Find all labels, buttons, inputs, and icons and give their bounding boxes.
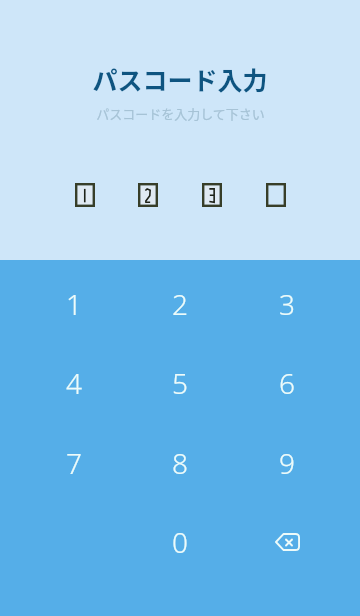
button[interactable]: 2 <box>127 264 233 344</box>
button[interactable]: 4 <box>21 343 127 423</box>
button[interactable]: Backspace <box>234 502 340 582</box>
button[interactable]: 3 <box>234 264 340 344</box>
staticText: 6 <box>279 364 295 402</box>
button[interactable]: 5 <box>127 343 233 423</box>
staticText: 1 <box>66 285 82 323</box>
staticText: パスコード入力 <box>92 61 268 97</box>
staticText: 7 <box>66 444 82 482</box>
button[interactable]: 7 <box>21 423 127 503</box>
button[interactable]: 9 <box>234 423 340 503</box>
button[interactable]: 6 <box>234 343 340 423</box>
button[interactable]: 1 <box>21 264 127 344</box>
staticText: 0 <box>172 523 188 561</box>
button[interactable]: 0 <box>127 502 233 582</box>
staticText: 3 <box>279 285 295 323</box>
staticText: 2 <box>172 285 188 323</box>
staticText: 5 <box>172 364 188 402</box>
button[interactable]: 8 <box>127 423 233 503</box>
staticText: 4 <box>66 364 82 402</box>
staticText: 9 <box>279 444 295 482</box>
staticText: パスコードを入力して下さい <box>96 104 265 123</box>
staticText: 8 <box>172 444 188 482</box>
